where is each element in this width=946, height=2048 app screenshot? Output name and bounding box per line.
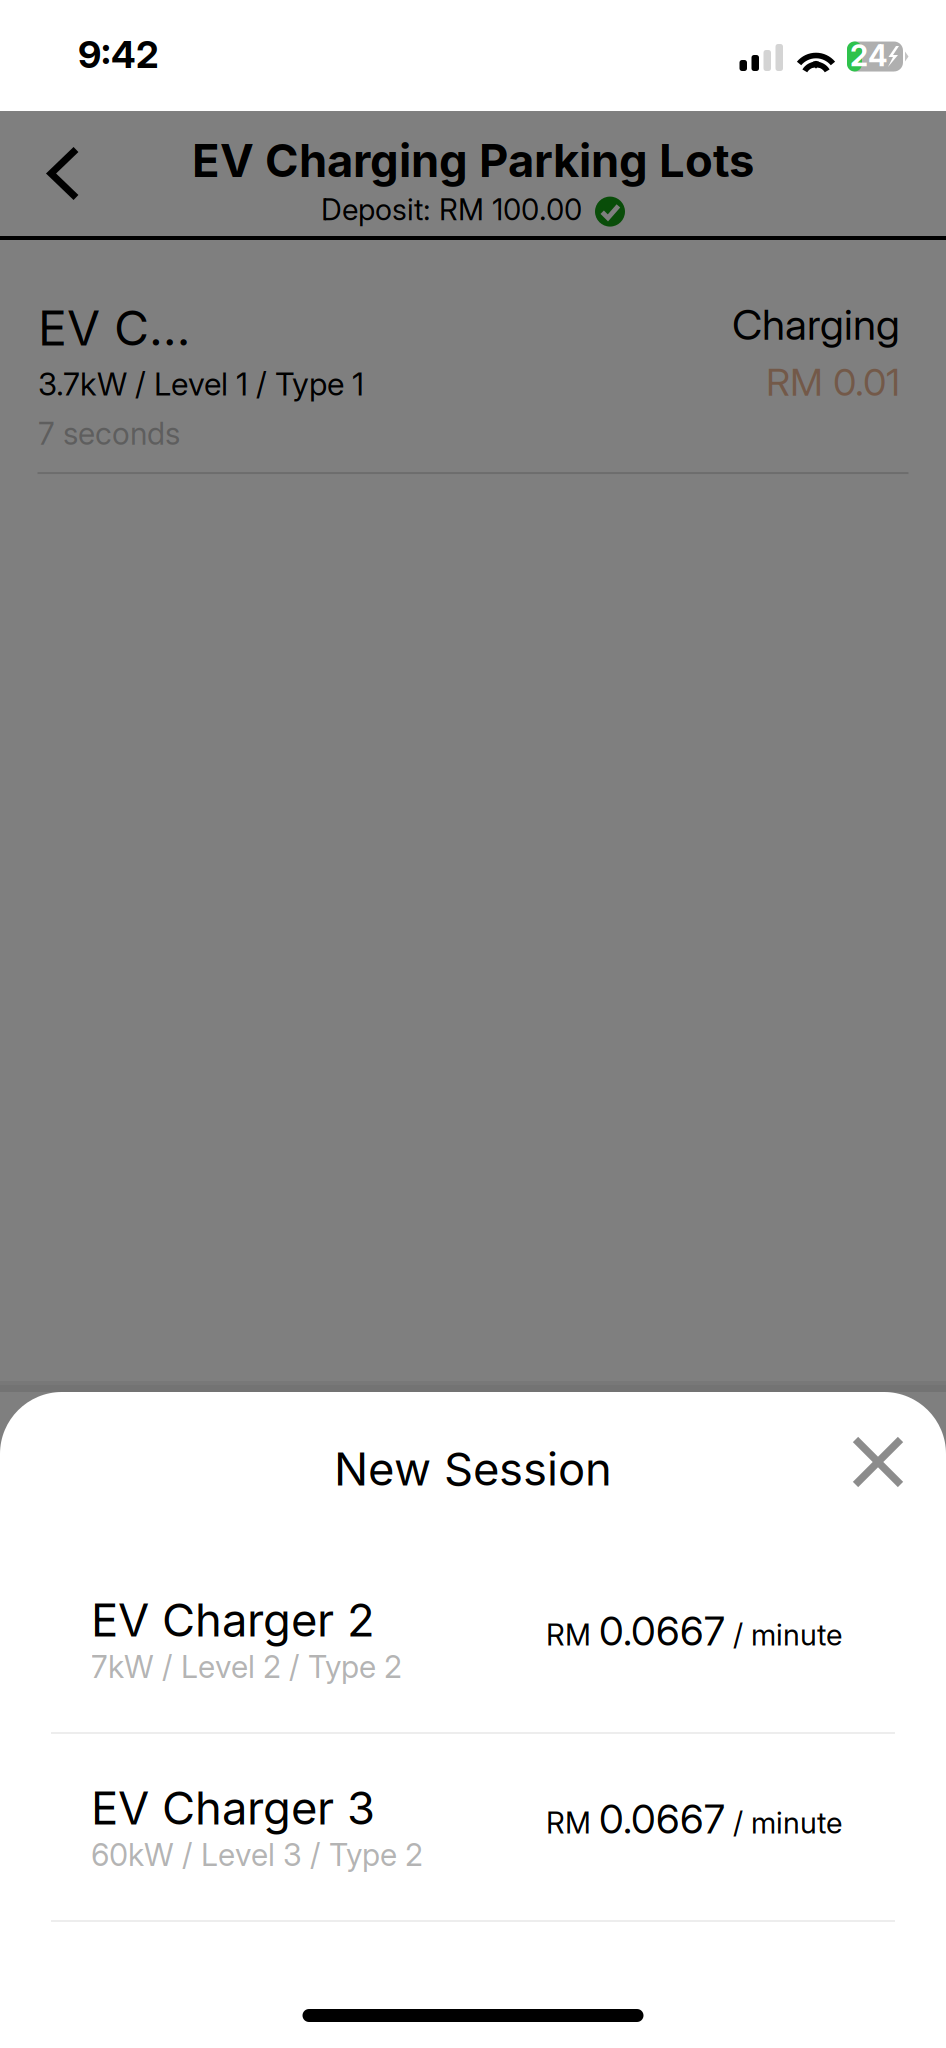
staticText: 0.0667 <box>599 1607 725 1655</box>
staticText: RM 0.01 <box>766 359 900 405</box>
staticText: 7kW / Level 2 / Type 2 <box>91 1648 402 1685</box>
staticText: 24 <box>850 38 888 73</box>
staticText: 60kW / Level 3 / Type 2 <box>91 1836 423 1873</box>
staticText: EV Charger 2 <box>91 1592 375 1647</box>
staticText: EV Charging Parking Lots <box>192 133 754 188</box>
button[interactable]: Close <box>823 1417 927 1521</box>
button[interactable]: EV Charger 3 <box>0 1734 946 1920</box>
staticText: / minute <box>725 1617 842 1653</box>
staticText: RM <box>546 1617 599 1653</box>
staticText: EV C… <box>38 299 190 357</box>
button[interactable]: Back <box>0 111 127 236</box>
staticText: Deposit: RM 100.00 <box>321 192 582 227</box>
staticText: EV Charger 3 <box>91 1780 375 1835</box>
staticText: 0.0667 <box>599 1795 725 1843</box>
staticText: 7 seconds <box>38 415 180 452</box>
staticText: RM <box>546 1805 599 1841</box>
staticText: / minute <box>725 1805 842 1841</box>
staticText: New Session <box>334 1442 612 1496</box>
button[interactable]: EV Charger 2 <box>0 1546 946 1732</box>
staticText: 3.7kW / Level 1 / Type 1 <box>38 365 364 403</box>
staticText: 9:42 <box>78 32 159 77</box>
staticText: Charging <box>732 299 900 350</box>
